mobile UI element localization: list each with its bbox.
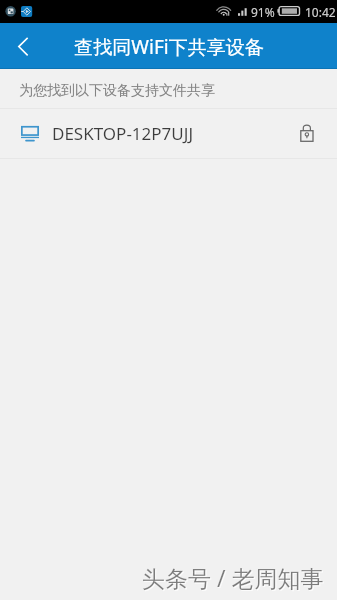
staticText: 91% bbox=[251, 4, 275, 20]
button[interactable]: DESKTOP-12P7UJJ bbox=[0, 109, 337, 158]
staticText: 10:42 bbox=[305, 4, 336, 20]
staticText: 为您找到以下设备支持文件共享 bbox=[19, 82, 215, 100]
button[interactable]: Locked device bbox=[289, 116, 325, 152]
button[interactable]: Back bbox=[0, 23, 46, 69]
staticText: 头条号 / 老周知事 bbox=[142, 562, 324, 593]
staticText: 查找同WiFi下共享设备 bbox=[74, 34, 264, 60]
staticText: 头条号 / 老周知事 bbox=[143, 563, 325, 594]
staticText: DESKTOP-12P7UJJ bbox=[52, 122, 194, 145]
